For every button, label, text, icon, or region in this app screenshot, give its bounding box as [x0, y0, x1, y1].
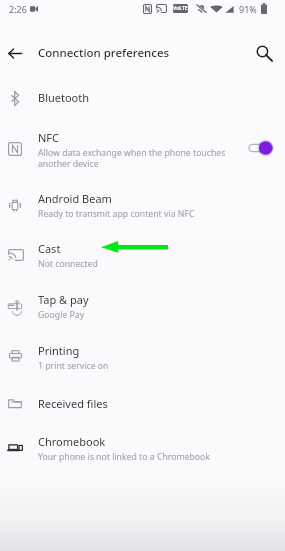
staticText: Google Pay [38, 309, 85, 321]
staticText: Cast [38, 241, 61, 256]
staticText: Bluetooth [38, 90, 90, 105]
button[interactable]: Back [0, 33, 35, 73]
button[interactable]: Search [247, 36, 283, 72]
staticText: NFC [38, 130, 60, 145]
button[interactable]: Bluetooth [0, 74, 285, 122]
staticText: Connection preferences [38, 45, 170, 61]
button[interactable]: NFC [0, 125, 285, 173]
button[interactable]: Cast [0, 231, 285, 279]
staticText: VoLTE [173, 5, 188, 12]
staticText: another device [38, 158, 99, 170]
staticText: 91% [239, 3, 257, 15]
staticText: Tap & pay [38, 292, 89, 307]
button[interactable]: Tap & pay [0, 283, 285, 331]
staticText: Not connected [38, 258, 98, 270]
staticText: 1 print service on [38, 360, 109, 372]
staticText: Ready to transmit app content via NFC [38, 208, 195, 220]
staticText: Chromebook [38, 434, 106, 449]
button[interactable]: NFC toggle [246, 138, 276, 158]
button[interactable]: Received files [0, 380, 285, 428]
staticText: Allow data exchange when the phone touch… [38, 147, 226, 159]
staticText: Your phone is not linked to a Chromebook [38, 451, 210, 463]
staticText: Android Beam [38, 191, 112, 206]
button[interactable]: Android Beam [0, 180, 285, 228]
button[interactable]: Chromebook [0, 424, 285, 472]
button[interactable]: Printing [0, 332, 285, 380]
staticText: 2:26 [9, 3, 27, 15]
staticText: Received files [38, 396, 108, 411]
staticText: Printing [38, 343, 80, 358]
